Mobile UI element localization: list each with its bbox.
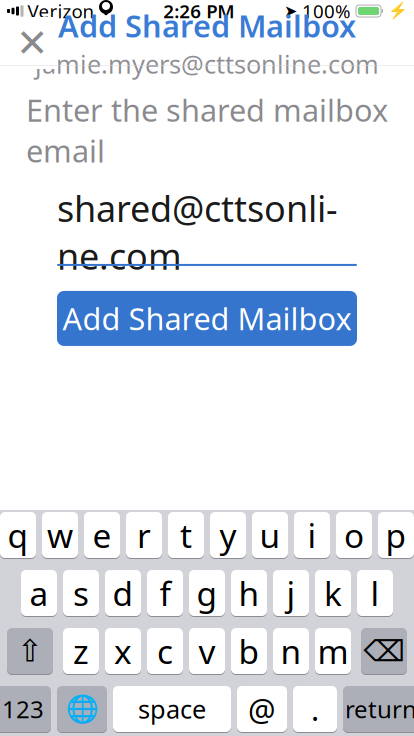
staticText: s xyxy=(73,571,89,615)
button[interactable]: b xyxy=(231,627,267,675)
button[interactable]: x xyxy=(105,627,141,675)
staticText: ➤ xyxy=(284,2,297,20)
staticText: . xyxy=(311,689,319,729)
button[interactable]: Delete xyxy=(361,627,407,675)
button[interactable]: Close xyxy=(6,17,58,69)
button[interactable]: Shift xyxy=(7,627,53,675)
staticText: q xyxy=(7,513,28,557)
button[interactable]: j xyxy=(273,569,309,617)
button[interactable]: r xyxy=(126,511,162,559)
button[interactable]: o xyxy=(336,511,372,559)
staticText: w xyxy=(47,513,73,557)
staticText: y xyxy=(219,513,236,557)
staticText: space xyxy=(138,692,206,726)
button[interactable]: 123 xyxy=(0,685,51,733)
staticText: p xyxy=(385,513,406,557)
button[interactable]: z xyxy=(63,627,99,675)
staticText: @ xyxy=(248,689,276,729)
button[interactable]: return xyxy=(343,685,414,733)
staticText: 100% xyxy=(302,0,351,23)
staticText: ⌫ xyxy=(363,634,404,668)
button[interactable]: v xyxy=(189,627,225,675)
button[interactable]: i xyxy=(294,511,330,559)
staticText: 🌐 xyxy=(65,694,98,724)
staticText: return xyxy=(345,693,414,725)
staticText: k xyxy=(324,571,342,615)
staticText: ⇧ xyxy=(17,634,43,668)
staticText: ⚡ xyxy=(388,2,408,20)
staticText: i xyxy=(307,513,316,557)
staticText: u xyxy=(259,513,280,557)
button[interactable]: m xyxy=(315,627,351,675)
button[interactable]: y xyxy=(210,511,246,559)
button[interactable]: space xyxy=(113,685,231,733)
button[interactable]: Period xyxy=(293,685,337,733)
staticText: m xyxy=(317,629,348,673)
staticText: Add Shared Mailbox xyxy=(62,298,351,339)
staticText: ✕ xyxy=(16,21,48,65)
button[interactable]: p xyxy=(378,511,414,559)
staticText: e xyxy=(92,513,111,557)
staticText: Add Shared Mailbox xyxy=(58,5,356,46)
button[interactable]: k xyxy=(315,569,351,617)
staticText: t xyxy=(180,513,192,557)
staticText: 123 xyxy=(2,693,44,725)
button[interactable]: t xyxy=(168,511,204,559)
button[interactable]: Add Shared Mailbox xyxy=(57,291,357,346)
button[interactable]: Next keyboard xyxy=(57,685,107,733)
staticText: 2:26 PM xyxy=(163,0,234,23)
button[interactable]: c xyxy=(147,627,183,675)
button[interactable]: g xyxy=(189,569,225,617)
staticText: c xyxy=(157,629,173,673)
staticText: b xyxy=(238,629,259,673)
button[interactable]: d xyxy=(105,569,141,617)
staticText: d xyxy=(112,571,133,615)
staticText: Verizon xyxy=(27,0,94,23)
staticText: v xyxy=(198,629,215,673)
button[interactable]: h xyxy=(231,569,267,617)
staticText: r xyxy=(137,513,151,557)
button[interactable]: f xyxy=(147,569,183,617)
staticText: f xyxy=(159,571,170,615)
button[interactable]: n xyxy=(273,627,309,675)
staticText: shared@cttsonline.com xyxy=(57,184,338,280)
staticText: o xyxy=(344,513,364,557)
staticText: Enter the shared mailbox email xyxy=(26,89,388,171)
staticText: n xyxy=(280,629,301,673)
button[interactable]: l xyxy=(357,569,393,617)
button[interactable]: a xyxy=(21,569,57,617)
button[interactable]: e xyxy=(84,511,120,559)
staticText: g xyxy=(196,571,217,615)
staticText: a xyxy=(29,571,48,615)
staticText: z xyxy=(73,629,89,673)
button[interactable]: u xyxy=(252,511,288,559)
staticText: j xyxy=(286,571,295,615)
staticText: h xyxy=(238,571,259,615)
button[interactable]: q xyxy=(0,511,36,559)
staticText: jamie.myers@cttsonline.com xyxy=(35,47,379,81)
button[interactable]: w xyxy=(42,511,78,559)
staticText: x xyxy=(114,629,132,673)
button[interactable]: s xyxy=(63,569,99,617)
button[interactable]: @ xyxy=(237,685,287,733)
staticText: l xyxy=(370,571,379,615)
